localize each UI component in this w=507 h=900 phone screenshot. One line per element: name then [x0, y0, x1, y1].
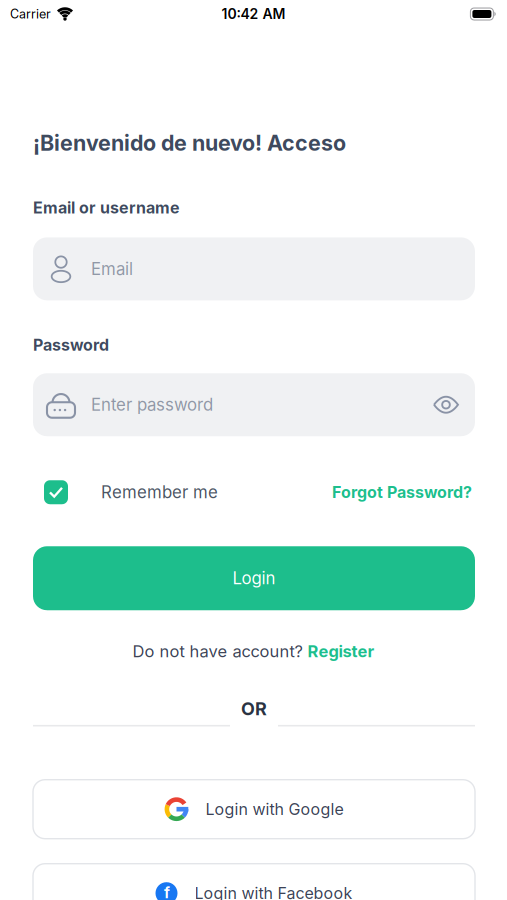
staticText: ¡Bienvenido de nuevo! Acceso [33, 130, 346, 156]
button[interactable]: f [33, 864, 475, 900]
staticText: Do not have account? [132, 641, 302, 661]
staticText: Register [307, 641, 374, 661]
staticText: Enter password [91, 395, 213, 415]
staticText: Forgot Password? [332, 483, 472, 502]
staticText: Login with Google [205, 799, 343, 819]
staticText: Remember me [101, 482, 218, 502]
staticText: 10:42 AM [221, 5, 285, 22]
staticText: Login [232, 568, 275, 588]
staticText: Carrier [10, 6, 51, 21]
staticText: f [164, 884, 170, 900]
staticText: OR [241, 698, 267, 720]
staticText: Password [33, 335, 109, 355]
button[interactable]: Login with Google [33, 780, 475, 839]
button[interactable]: Remember me [44, 480, 218, 504]
staticText: Login with Facebook [194, 883, 352, 900]
button[interactable]: Show password [433, 396, 459, 414]
staticText: Email [91, 259, 133, 279]
staticText: Email or username [33, 198, 180, 217]
button[interactable]: Register [307, 641, 374, 661]
staticText [302, 641, 307, 661]
button[interactable]: Login [33, 546, 475, 610]
button[interactable]: Forgot Password? [332, 483, 472, 502]
